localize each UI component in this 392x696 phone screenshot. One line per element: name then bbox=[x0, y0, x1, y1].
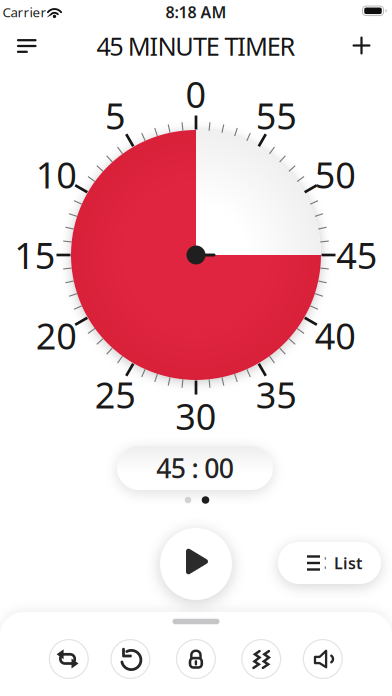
staticText: 50 bbox=[315, 151, 356, 198]
staticText: 45 : 00 bbox=[156, 450, 234, 486]
staticText: 15 bbox=[14, 231, 56, 279]
staticText: 10 bbox=[36, 151, 77, 198]
staticText: Carrier bbox=[2, 3, 46, 21]
staticText: 45 bbox=[336, 231, 378, 279]
staticText: 35 bbox=[256, 370, 297, 418]
staticText: 25 bbox=[95, 370, 136, 418]
button[interactable]: 45 : 00 bbox=[117, 446, 273, 490]
staticText: 30 bbox=[175, 392, 217, 440]
button[interactable]: Repeat bbox=[49, 639, 89, 679]
staticText: 8:18 AM bbox=[165, 1, 226, 23]
button[interactable]: Menu bbox=[14, 34, 40, 58]
staticText: 20 bbox=[36, 312, 77, 359]
staticText: 5 bbox=[105, 92, 126, 139]
button[interactable]: Lock bbox=[176, 639, 216, 679]
button[interactable]: Start bbox=[160, 528, 232, 600]
button[interactable]: Add timer bbox=[352, 36, 370, 54]
staticText: 55 bbox=[256, 92, 297, 139]
button[interactable]: List bbox=[278, 542, 381, 584]
button[interactable]: Vibrate bbox=[241, 639, 281, 679]
staticText: 40 bbox=[315, 312, 356, 359]
button[interactable]: Sound bbox=[303, 639, 343, 679]
staticText: List bbox=[334, 552, 362, 574]
staticText: 0 bbox=[185, 70, 206, 118]
staticText: 45 MINUTE TIMER bbox=[96, 29, 296, 63]
button[interactable]: Restart bbox=[110, 639, 150, 679]
